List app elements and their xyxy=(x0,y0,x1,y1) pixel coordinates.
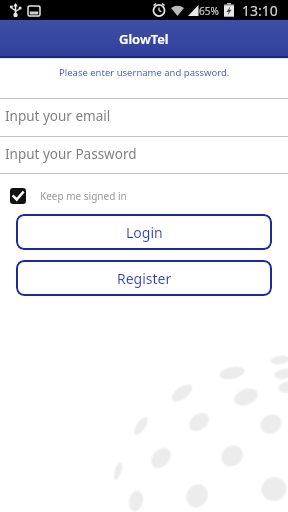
staticText: Please enter username and password. xyxy=(59,66,230,79)
button[interactable]: Input your email xyxy=(0,99,288,137)
staticText: GlowTel xyxy=(119,30,169,48)
button[interactable]: Keep me signed in xyxy=(0,185,288,206)
staticText: Login xyxy=(126,223,163,242)
button[interactable]: Input your Password xyxy=(0,137,288,174)
staticText: 65% xyxy=(199,4,219,18)
staticText: 13:10 xyxy=(242,1,278,20)
staticText: Input your email xyxy=(5,107,111,125)
button[interactable]: Login xyxy=(16,214,272,250)
staticText: Input your Password xyxy=(5,145,137,163)
button[interactable]: Register xyxy=(16,260,272,296)
staticText: Register xyxy=(117,269,172,288)
staticText: Keep me signed in xyxy=(40,189,127,203)
